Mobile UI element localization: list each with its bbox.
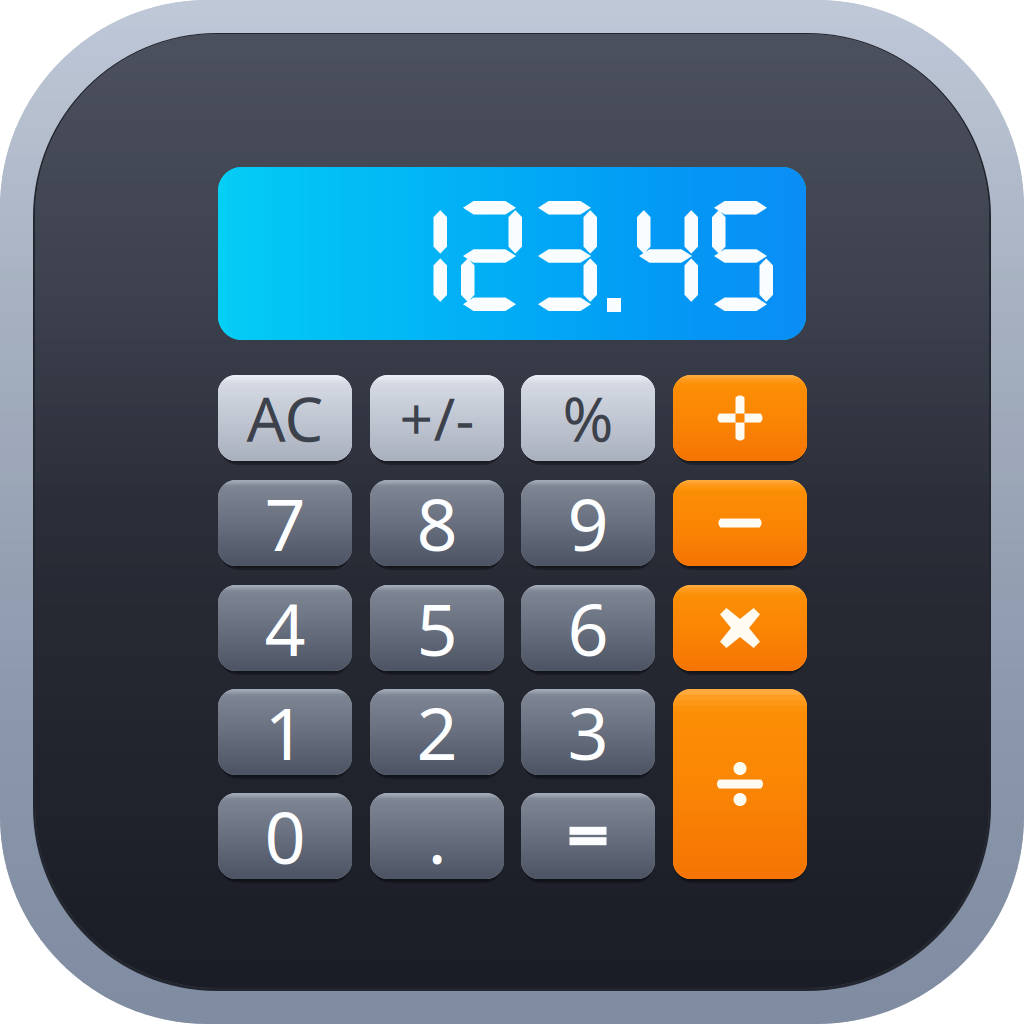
button[interactable] [673, 689, 807, 879]
staticText: 3 [567, 684, 608, 780]
staticText: 8 [416, 475, 457, 571]
button[interactable]: 0 [218, 793, 352, 879]
staticText: AC [246, 377, 323, 459]
button[interactable]: AC [218, 375, 352, 461]
staticText: 0 [264, 788, 305, 884]
button[interactable]: 3 [521, 689, 655, 775]
button[interactable]: +/- [370, 375, 504, 461]
button[interactable]: 8 [370, 480, 504, 566]
button[interactable]: 7 [218, 480, 352, 566]
button[interactable]: % [521, 375, 655, 461]
staticText: 2 [416, 684, 457, 780]
staticText: 7 [264, 475, 305, 571]
button[interactable]: 9 [521, 480, 655, 566]
button[interactable] [521, 793, 655, 879]
button[interactable]: 6 [521, 585, 655, 671]
button[interactable]: 4 [218, 585, 352, 671]
staticText: +/- [399, 379, 474, 457]
staticText: 1 [264, 684, 305, 780]
staticText: 9 [567, 475, 608, 571]
button[interactable]: . [370, 793, 504, 879]
button[interactable]: 5 [370, 585, 504, 671]
button[interactable] [673, 480, 807, 566]
staticText: 5 [416, 580, 457, 676]
staticText: 6 [567, 580, 608, 676]
staticText: . [427, 788, 446, 884]
button[interactable] [673, 375, 807, 461]
button[interactable]: 2 [370, 689, 504, 775]
button[interactable]: 1 [218, 689, 352, 775]
staticText: % [562, 377, 613, 459]
button[interactable] [673, 585, 807, 671]
staticText: 4 [264, 580, 305, 676]
